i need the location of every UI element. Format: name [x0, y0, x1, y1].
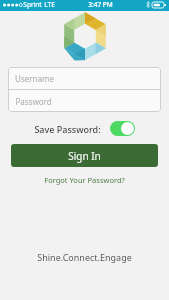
other: App logo: [61, 15, 109, 61]
staticText: Username: [15, 73, 54, 84]
button[interactable]: Forgot Your Password?: [0, 173, 169, 187]
staticText: Sign In: [68, 149, 101, 163]
staticText: Sprint: [23, 0, 42, 9]
staticText: Save Password:: [34, 123, 101, 135]
staticText: Password: [15, 96, 52, 107]
staticText: 3:47 PM: [88, 0, 113, 9]
staticText: Forgot Your Password?: [44, 175, 125, 185]
button[interactable]: Save password toggle, on: [110, 121, 135, 136]
staticText: Shine.Connect.Engage: [37, 251, 132, 263]
button[interactable]: Password: [8, 90, 161, 112]
button[interactable]: Username: [8, 67, 161, 89]
staticText: LTE: [44, 0, 55, 9]
button[interactable]: Sign In: [11, 144, 158, 167]
